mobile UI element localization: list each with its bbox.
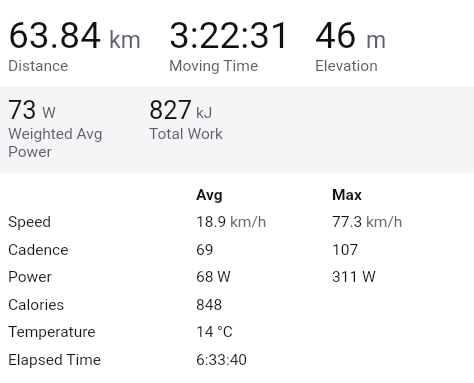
staticText: 848 [196,296,223,314]
staticText: km [109,27,141,54]
staticText: Max [332,186,362,204]
button[interactable]: 63.84 [8,14,133,75]
staticText: km/h [230,213,267,231]
staticText: 77.3 [332,213,363,231]
staticText: 73 [8,95,37,125]
staticText: W [217,268,231,286]
staticText: 827 [149,95,192,125]
button[interactable]: 73 [8,95,103,161]
button[interactable]: 3:22:31 [169,14,291,75]
staticText: 46 [315,14,357,57]
staticText: Avg [196,186,223,204]
staticText: 68 [196,268,214,286]
button[interactable]: Avg [0,186,474,211]
button[interactable]: Power [0,268,474,293]
staticText: Temperature [8,323,96,341]
staticText: kJ [196,104,213,122]
staticText: °C [217,323,233,341]
staticText: 69 [196,241,214,259]
staticText: Weighted Avg [8,125,103,143]
button[interactable]: Cadence [0,241,474,266]
staticText: Cadence [8,241,69,259]
staticText: W [42,104,56,122]
staticText: Moving Time [169,57,259,75]
button[interactable]: Temperature [0,323,474,348]
button[interactable]: Calories [0,296,474,321]
staticText: Elevation [315,57,378,75]
button[interactable]: Elapsed Time [0,351,474,376]
button[interactable]: Speed [0,213,474,238]
staticText: Elapsed Time [8,351,102,369]
staticText: 63.84 [8,14,101,57]
staticText: 311 [332,268,359,286]
button[interactable]: 46 [315,14,378,75]
button[interactable]: 827 [149,95,223,143]
staticText: Speed [8,213,52,231]
staticText: 18.9 [196,213,227,231]
staticText: Distance [8,57,69,75]
staticText: W [362,268,376,286]
staticText: Total Work [149,125,223,143]
staticText: m [366,27,387,54]
staticText: Power [8,268,52,286]
staticText: Calories [8,296,65,314]
staticText: 3:22:31 [169,14,291,57]
staticText: 6:33:40 [196,351,248,369]
staticText: km/h [366,213,403,231]
staticText: 14 [196,323,214,341]
staticText: Power [8,143,52,161]
staticText: 107 [332,241,359,259]
